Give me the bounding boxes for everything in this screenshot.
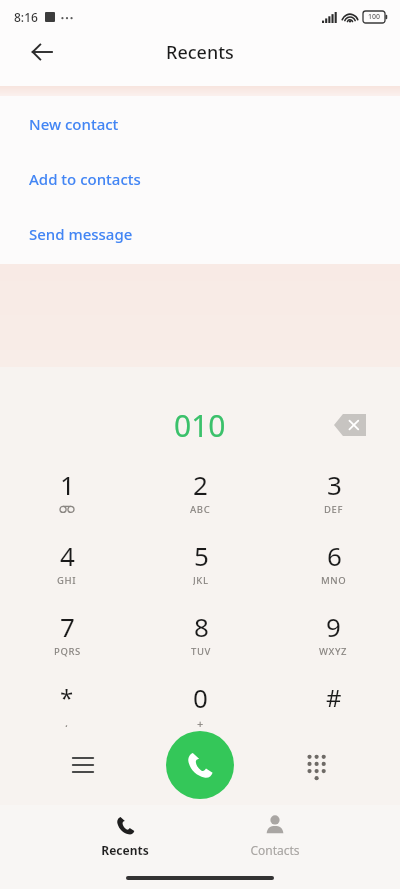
staticText: 2 bbox=[193, 467, 208, 502]
staticText: Send message bbox=[29, 224, 133, 244]
button[interactable]: Back bbox=[22, 32, 62, 72]
button[interactable]: New contact bbox=[0, 96, 400, 151]
staticText: 6 bbox=[327, 538, 342, 573]
staticText: DEF bbox=[324, 503, 344, 515]
button[interactable]: * bbox=[0, 668, 134, 739]
staticText: ABC bbox=[190, 503, 211, 515]
staticText: * bbox=[60, 681, 74, 714]
staticText: 3 bbox=[327, 467, 342, 502]
staticText: Add to contacts bbox=[29, 169, 141, 189]
button[interactable]: 0 bbox=[134, 668, 267, 739]
button[interactable]: Backspace bbox=[330, 405, 370, 445]
staticText: Recents bbox=[101, 842, 149, 858]
staticText: # bbox=[326, 681, 342, 714]
staticText: JKL bbox=[193, 574, 209, 586]
button[interactable]: 2 bbox=[134, 455, 267, 526]
staticText: GHI bbox=[57, 574, 77, 586]
button[interactable]: Send message bbox=[0, 206, 400, 261]
button[interactable]: Dialpad bbox=[297, 745, 337, 785]
button[interactable]: Contacts bbox=[205, 805, 345, 865]
button[interactable]: 7 bbox=[0, 597, 134, 668]
button[interactable]: # bbox=[267, 668, 400, 739]
staticText: PQRS bbox=[54, 645, 81, 657]
staticText: , bbox=[65, 715, 69, 727]
staticText: 1 bbox=[60, 467, 75, 502]
staticText: 5 bbox=[194, 538, 209, 573]
staticText: 8:16 bbox=[14, 9, 38, 25]
staticText: TUV bbox=[191, 645, 211, 657]
staticText: New contact bbox=[29, 114, 119, 134]
button[interactable]: 6 bbox=[267, 526, 400, 597]
button[interactable]: 3 bbox=[267, 455, 400, 526]
button[interactable]: 8 bbox=[134, 597, 267, 668]
button[interactable]: 1 bbox=[0, 455, 134, 526]
button[interactable]: 5 bbox=[134, 526, 267, 597]
staticText: 010 bbox=[174, 405, 226, 446]
button[interactable]: Recents bbox=[55, 805, 195, 865]
staticText: WXYZ bbox=[319, 645, 348, 657]
button[interactable]: Menu bbox=[63, 745, 103, 785]
staticText: 8 bbox=[194, 609, 209, 644]
staticText: 0 bbox=[193, 680, 208, 715]
staticText: 4 bbox=[60, 538, 75, 573]
staticText: + bbox=[197, 716, 204, 728]
button[interactable]: Add to contacts bbox=[0, 151, 400, 206]
button[interactable]: 9 bbox=[267, 597, 400, 668]
staticText: Recents bbox=[166, 40, 234, 65]
staticText: MNO bbox=[321, 574, 347, 586]
staticText: 9 bbox=[326, 609, 341, 644]
button[interactable]: 4 bbox=[0, 526, 134, 597]
staticText: 7 bbox=[60, 609, 75, 644]
staticText: 100 bbox=[368, 12, 381, 22]
button[interactable]: Call bbox=[166, 731, 234, 799]
staticText: Contacts bbox=[250, 842, 300, 858]
